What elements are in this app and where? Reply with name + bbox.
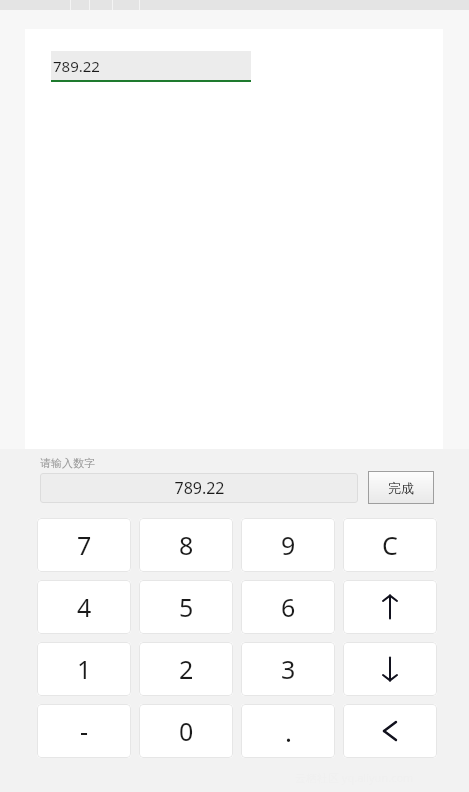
button[interactable]: Move up	[343, 580, 437, 634]
button[interactable]: -	[37, 704, 131, 758]
button[interactable]: 8	[139, 518, 233, 572]
staticText: C	[382, 528, 398, 562]
staticText: 3	[281, 652, 296, 686]
button[interactable]: 1	[37, 642, 131, 696]
staticText: 完成	[388, 480, 414, 496]
staticText: 8	[179, 528, 194, 562]
button[interactable]: .	[241, 704, 335, 758]
button[interactable]: 6	[241, 580, 335, 634]
staticText: 7	[77, 528, 92, 562]
staticText: -	[80, 714, 89, 748]
staticText: 请输入数字	[40, 456, 95, 470]
button[interactable]: C	[343, 518, 437, 572]
button[interactable]: 9	[241, 518, 335, 572]
staticText: 1	[77, 652, 92, 686]
button[interactable]: 3	[241, 642, 335, 696]
button[interactable]: 789.22	[51, 51, 251, 80]
button[interactable]: Move down	[343, 642, 437, 696]
staticText: 789.22	[53, 56, 100, 76]
button[interactable]: 2	[139, 642, 233, 696]
staticText: 6	[281, 590, 296, 624]
button[interactable]: Backspace	[343, 704, 437, 758]
staticText: 9	[281, 528, 296, 562]
button[interactable]: 7	[37, 518, 131, 572]
staticText: .	[285, 714, 292, 749]
staticText: 4	[77, 590, 92, 624]
button[interactable]: 完成	[368, 471, 434, 504]
button[interactable]: 0	[139, 704, 233, 758]
button[interactable]: 789.22	[40, 473, 358, 503]
button[interactable]: 5	[139, 580, 233, 634]
staticText: 5	[179, 590, 194, 624]
staticText: 789.22	[174, 477, 225, 499]
button[interactable]: 4	[37, 580, 131, 634]
staticText: 2	[179, 652, 194, 686]
staticText: 0	[179, 714, 194, 748]
